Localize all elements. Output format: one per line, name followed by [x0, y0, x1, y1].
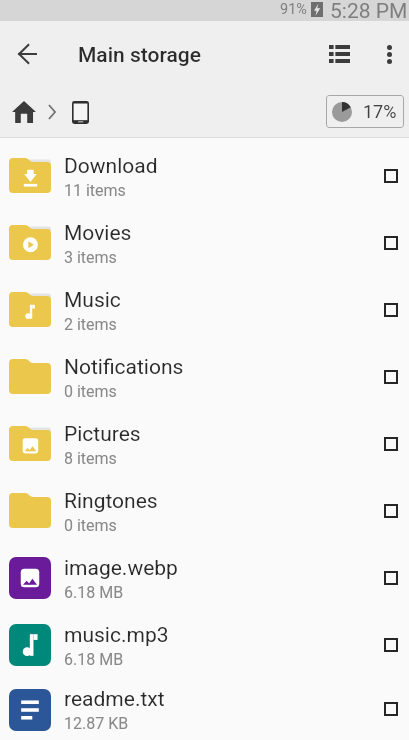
button[interactable]: Movies [0, 209, 409, 276]
button[interactable]: Notifications [0, 343, 409, 410]
button[interactable]: 17% [326, 95, 404, 128]
staticText: 12.87 KB [64, 714, 129, 733]
button[interactable]: image.webp [0, 544, 409, 611]
staticText: Movies [64, 221, 132, 246]
staticText: image.webp [64, 556, 178, 581]
staticText: 6.18 MB [64, 650, 124, 669]
button[interactable]: Ringtones [0, 477, 409, 544]
button[interactable]: Select Pictures [374, 427, 408, 461]
staticText: 8 items [64, 449, 117, 468]
staticText: music.mp3 [64, 623, 169, 648]
button[interactable]: Select Music [374, 293, 408, 327]
staticText: readme.txt [64, 687, 165, 712]
button[interactable]: Select Ringtones [374, 494, 408, 528]
button[interactable]: Download [0, 142, 409, 209]
staticText: Pictures [64, 422, 141, 447]
button[interactable]: View mode [319, 32, 363, 76]
staticText: 0 items [64, 382, 117, 401]
staticText: Download [64, 154, 158, 179]
button[interactable]: Select music.mp3 [374, 628, 408, 662]
button[interactable]: Select Notifications [374, 360, 408, 394]
button[interactable]: Select Download [374, 159, 408, 193]
button[interactable]: Home [10, 98, 38, 126]
staticText: Music [64, 288, 121, 313]
button[interactable]: Select image.webp [374, 561, 408, 595]
staticText: Main storage [78, 43, 201, 68]
staticText: 6.18 MB [64, 583, 124, 602]
staticText: Notifications [64, 355, 184, 380]
staticText: 17% [363, 101, 397, 122]
staticText: 91% [280, 1, 307, 18]
staticText: 0 items [64, 516, 117, 535]
button[interactable]: Device storage [67, 99, 93, 125]
button[interactable]: readme.txt [0, 678, 409, 740]
staticText: Ringtones [64, 489, 158, 514]
button[interactable]: Pictures [0, 410, 409, 477]
button[interactable]: music.mp3 [0, 611, 409, 678]
button[interactable]: Back [7, 34, 47, 74]
button[interactable]: Music [0, 276, 409, 343]
staticText: 5:28 PM [330, 0, 408, 20]
button[interactable]: Select Movies [374, 226, 408, 260]
button[interactable]: Select readme.txt [374, 692, 408, 726]
staticText: 3 items [64, 248, 117, 267]
staticText: 11 items [64, 181, 126, 200]
button[interactable]: More options [363, 32, 407, 76]
staticText: 2 items [64, 315, 117, 334]
